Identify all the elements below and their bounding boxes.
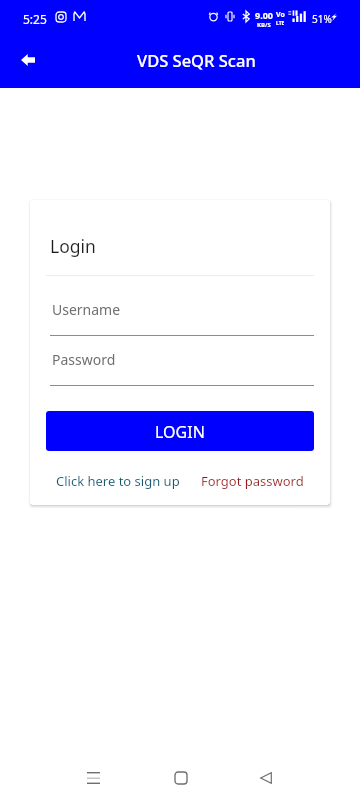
button[interactable]: Home	[159, 758, 202, 798]
staticText: 5:25	[23, 11, 47, 27]
staticText: VDS SeQR Scan	[137, 49, 256, 71]
staticText: Login	[50, 234, 96, 258]
staticText: Forgot password	[201, 472, 304, 490]
staticText: LOGIN	[155, 421, 205, 443]
staticText: 51%	[312, 12, 332, 26]
staticText: Vo	[276, 10, 285, 20]
button[interactable]: Forgot password	[195, 466, 310, 496]
button[interactable]: Back	[244, 758, 287, 798]
staticText: Password	[52, 350, 116, 369]
staticText: Click here to sign up	[56, 472, 180, 490]
button[interactable]: Back	[13, 45, 43, 75]
staticText: Username	[52, 300, 121, 319]
button[interactable]: Recent apps	[72, 758, 115, 798]
staticText: KB/S	[257, 21, 271, 29]
button[interactable]: Click here to sign up	[50, 466, 186, 496]
staticText: 9.00	[255, 9, 273, 21]
button[interactable]: LOGIN	[46, 411, 314, 451]
staticText: LTE	[276, 20, 285, 27]
